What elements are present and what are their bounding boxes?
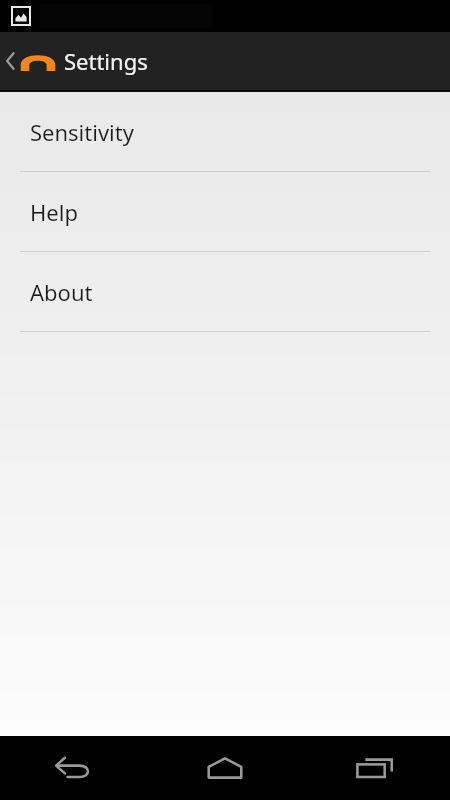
button[interactable]: Home	[150, 736, 300, 800]
staticText: Sensitivity	[30, 117, 134, 147]
button[interactable]: Help	[0, 172, 450, 251]
staticText: Settings	[64, 46, 148, 76]
staticText: Help	[30, 197, 78, 227]
button[interactable]: Recent apps	[300, 736, 450, 800]
button[interactable]: Back	[0, 736, 150, 800]
staticText: About	[30, 277, 93, 307]
button[interactable]: Sensitivity	[0, 92, 450, 171]
button[interactable]: Navigate up	[0, 32, 154, 90]
button[interactable]: About	[0, 252, 450, 331]
